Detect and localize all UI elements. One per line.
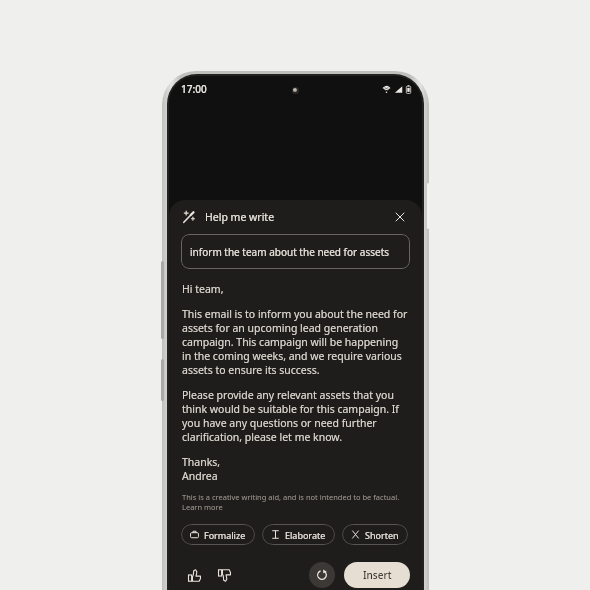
button[interactable]: Formalize <box>181 524 255 545</box>
button[interactable]: Insert <box>344 562 410 588</box>
staticText: Formalize <box>204 529 246 541</box>
staticText: This is a creative writing aid, and is n… <box>182 492 400 502</box>
staticText: Andrea <box>182 469 218 483</box>
staticText: Hi team, <box>182 282 224 296</box>
staticText: inform the team about the need for asset… <box>190 245 401 259</box>
staticText: Elaborate <box>285 529 326 541</box>
staticText: This email is to inform you about the ne… <box>182 307 409 377</box>
button[interactable]: inform the team about the need for asset… <box>181 234 410 269</box>
staticText: Learn more <box>182 502 223 512</box>
button[interactable]: Close <box>389 206 411 228</box>
button[interactable]: Thumbs up <box>182 563 206 587</box>
staticText: Thanks, <box>182 455 221 469</box>
button[interactable]: Learn more <box>182 502 223 512</box>
button[interactable]: Regenerate <box>309 562 335 588</box>
button[interactable]: Thumbs down <box>212 563 236 587</box>
button[interactable]: Shorten <box>342 524 408 545</box>
staticText: Shorten <box>365 529 399 541</box>
staticText: 17:00 <box>181 82 207 96</box>
staticText: Insert <box>363 568 392 582</box>
staticText: Help me write <box>205 210 275 224</box>
button[interactable]: Elaborate <box>262 524 335 545</box>
staticText: Please provide any relevant assets that … <box>182 388 409 444</box>
